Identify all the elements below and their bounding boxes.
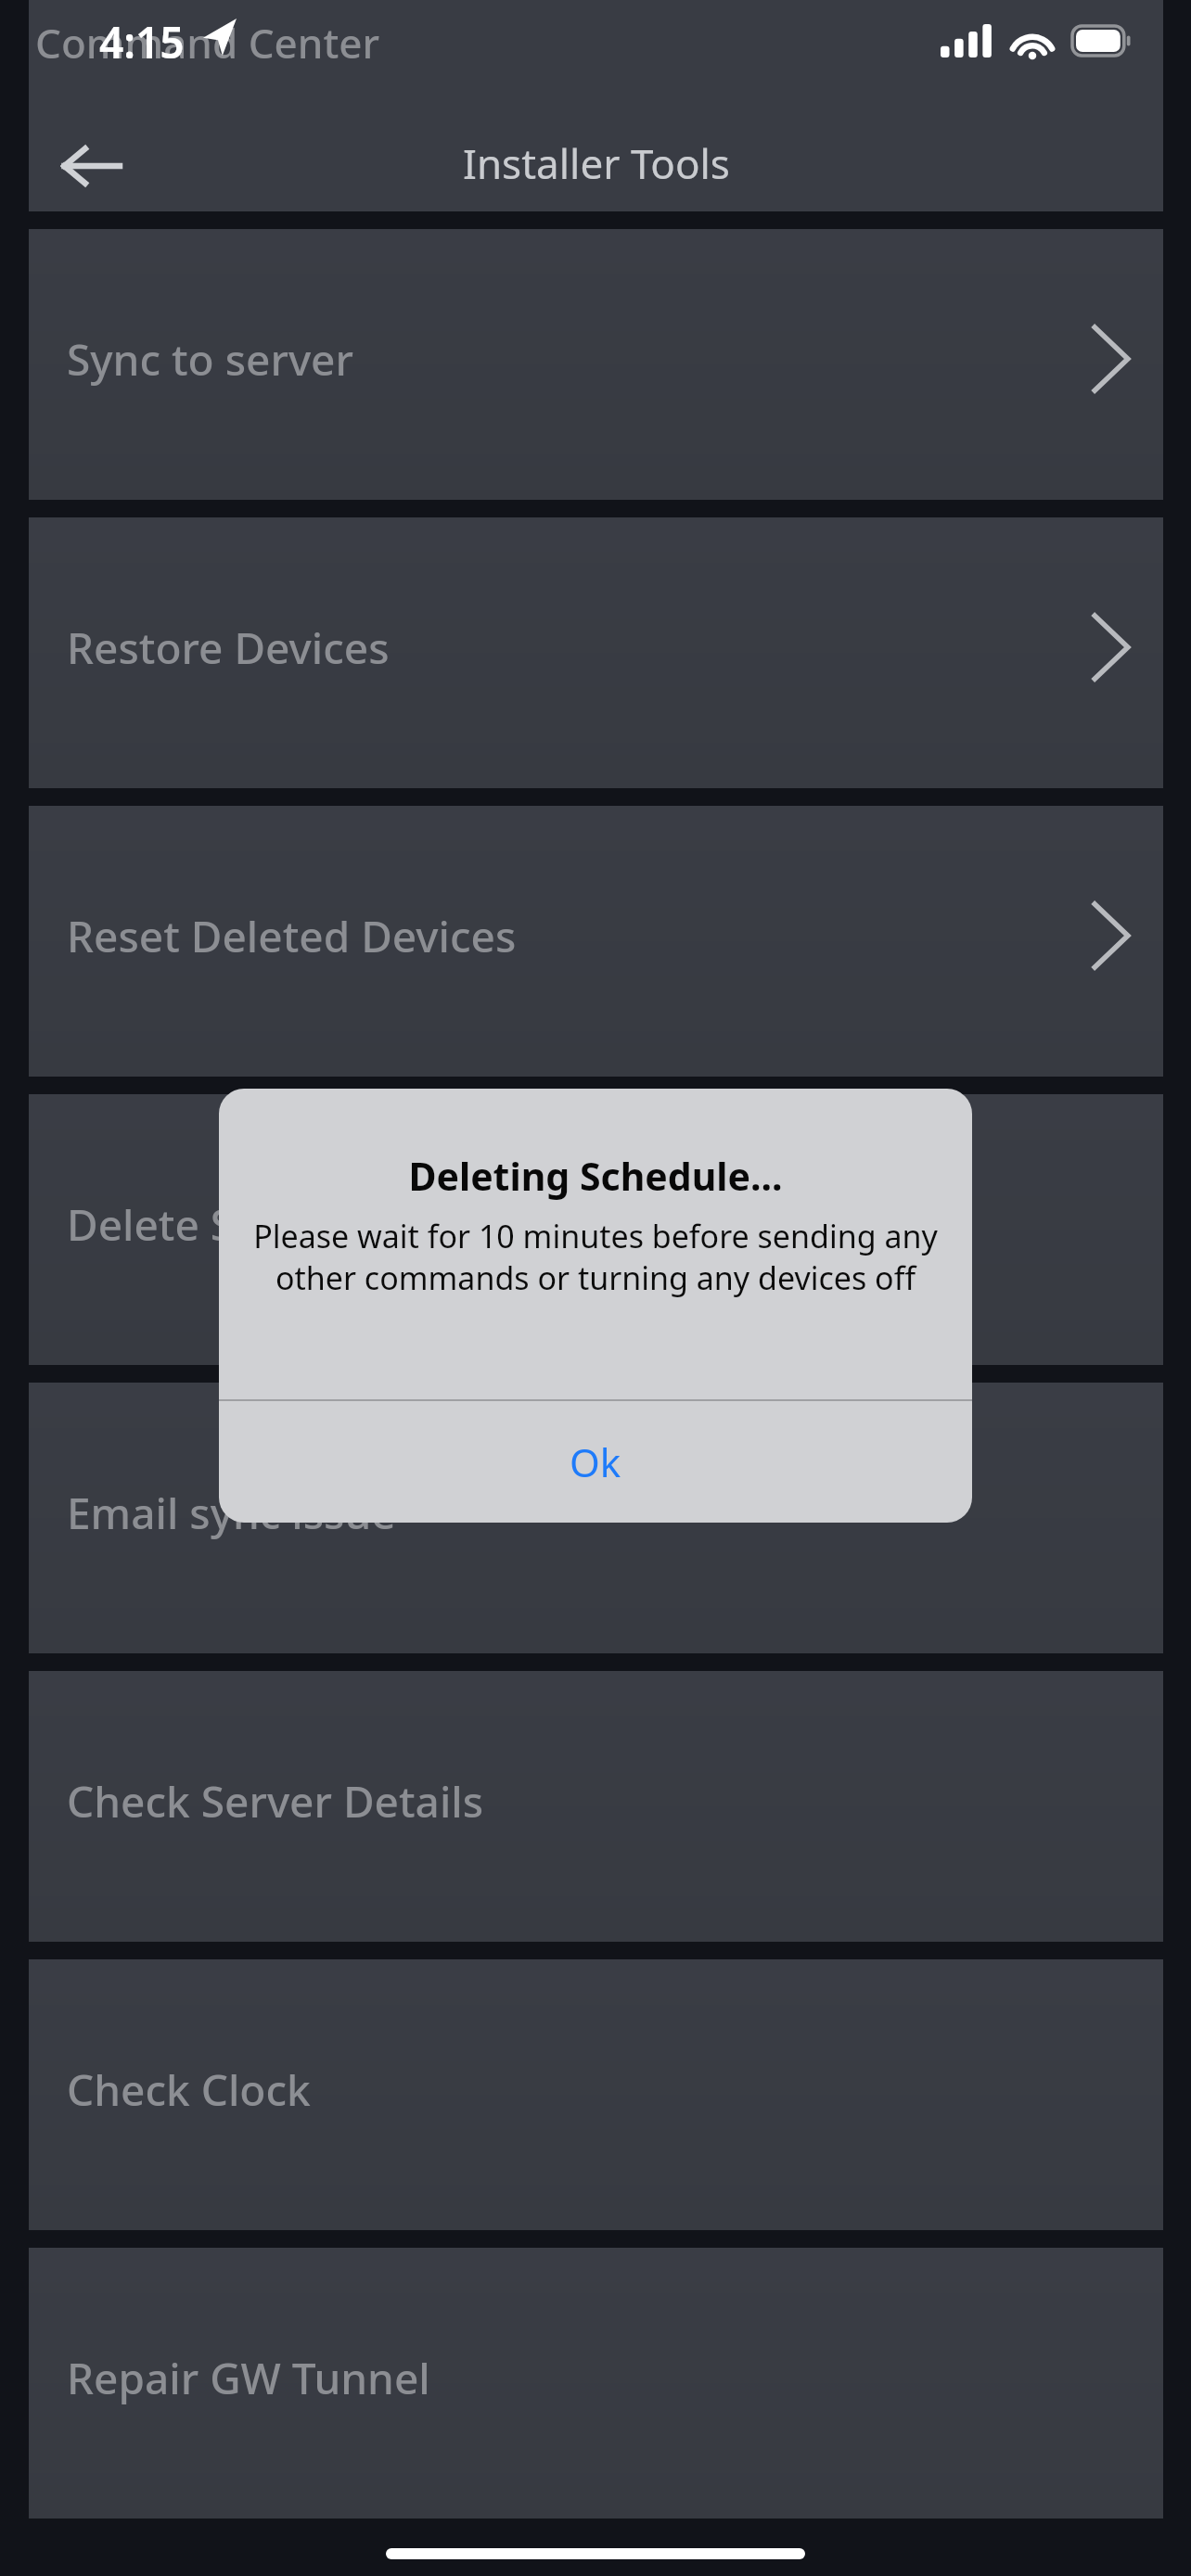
button[interactable]: Email sync issue [29, 1383, 1163, 1653]
button[interactable]: Check Clock [29, 1959, 1163, 2230]
button[interactable]: Delete Schedules [29, 1094, 1163, 1365]
staticText: Delete Schedules [67, 1195, 416, 1254]
staticText: Restore Devices [67, 618, 390, 677]
button[interactable]: Ok [219, 1401, 972, 1523]
staticText: 4:15 [99, 13, 185, 71]
button[interactable]: Back [40, 119, 142, 211]
button[interactable]: Reset Deleted Devices [29, 806, 1163, 1077]
staticText: Reset Deleted Devices [67, 907, 517, 965]
staticText: Repair GW Tunnel [67, 2349, 430, 2407]
staticText: Installer Tools [463, 135, 730, 191]
button[interactable]: Check Server Details [29, 1671, 1163, 1942]
staticText: Sync to server [67, 330, 353, 389]
staticText: Deleting Schedule... [219, 1150, 972, 1202]
button[interactable]: Restore Devices [29, 517, 1163, 788]
staticText: Check Server Details [67, 1772, 484, 1830]
staticText: Check Clock [67, 2060, 311, 2119]
staticText: Please wait for 10 minutes before sendin… [241, 1215, 950, 1298]
staticText: Ok [570, 1435, 621, 1488]
staticText: Email sync issue [67, 1484, 396, 1542]
staticText: Command Center [35, 15, 380, 70]
button[interactable]: Sync to server [29, 229, 1163, 500]
button[interactable]: Repair GW Tunnel [29, 2248, 1163, 2519]
